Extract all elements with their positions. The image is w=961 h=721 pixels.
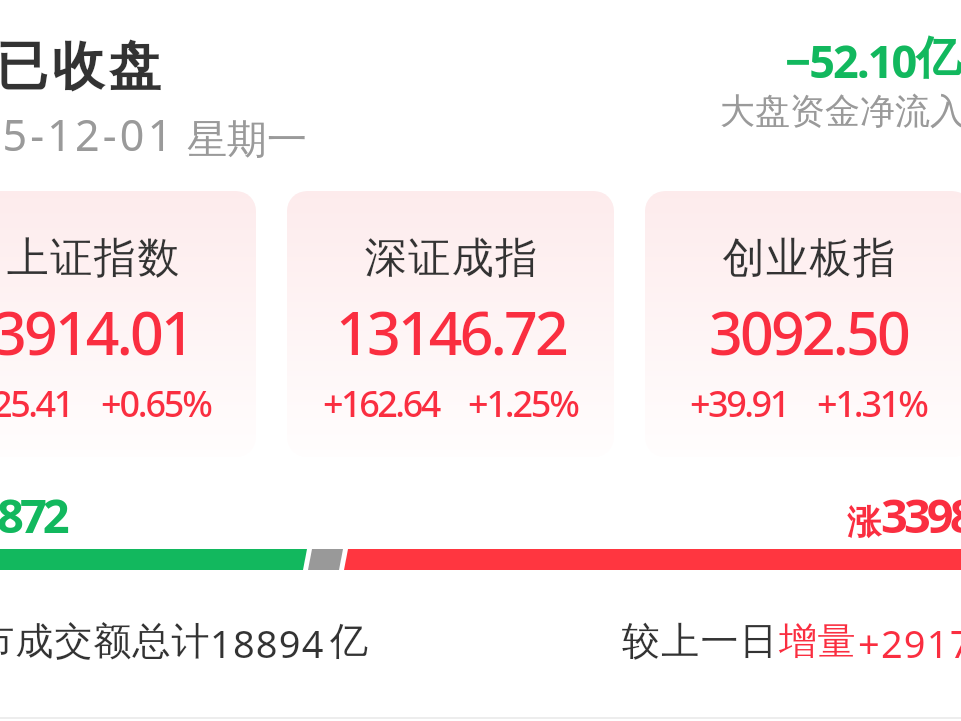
staticText: +1.25% [468, 379, 578, 428]
staticText: 涨 [847, 501, 881, 544]
staticText: 13146.72 [336, 292, 566, 372]
staticText: 3092.50 [709, 292, 908, 372]
staticText: 星期一 [187, 114, 307, 164]
staticText: +2917 [858, 617, 961, 669]
staticText: 3914.01 [0, 292, 192, 372]
staticText: 亿 [916, 30, 961, 87]
staticText: 两市成交额总计 [0, 617, 210, 665]
staticText: 872 [0, 483, 66, 547]
staticText: −52.10 [785, 30, 916, 91]
staticText: 深证成指 [364, 232, 538, 285]
staticText: 18894 [210, 617, 325, 669]
button[interactable]: 上证指数 [0, 191, 256, 457]
staticText: 增量 [779, 617, 857, 665]
staticText: 亿 [330, 617, 368, 665]
staticText: 已收盘 [0, 34, 165, 100]
staticText: +39.91 [690, 379, 788, 428]
staticText: 创业板指 [722, 232, 896, 285]
staticText: 2025-12-01 [0, 105, 176, 164]
staticText: +25.41 [0, 379, 72, 428]
staticText: 大盘资金净流入 [720, 89, 961, 133]
staticText: 较上一日 [622, 617, 779, 665]
staticText: 上证指数 [6, 232, 180, 285]
staticText: +0.65% [101, 379, 211, 428]
button[interactable]: 创业板指 [645, 191, 961, 457]
button[interactable]: 深证成指 [287, 191, 614, 457]
staticText: +162.64 [323, 379, 439, 428]
staticText: +1.31% [817, 379, 927, 428]
staticText: 3398 [881, 483, 961, 547]
